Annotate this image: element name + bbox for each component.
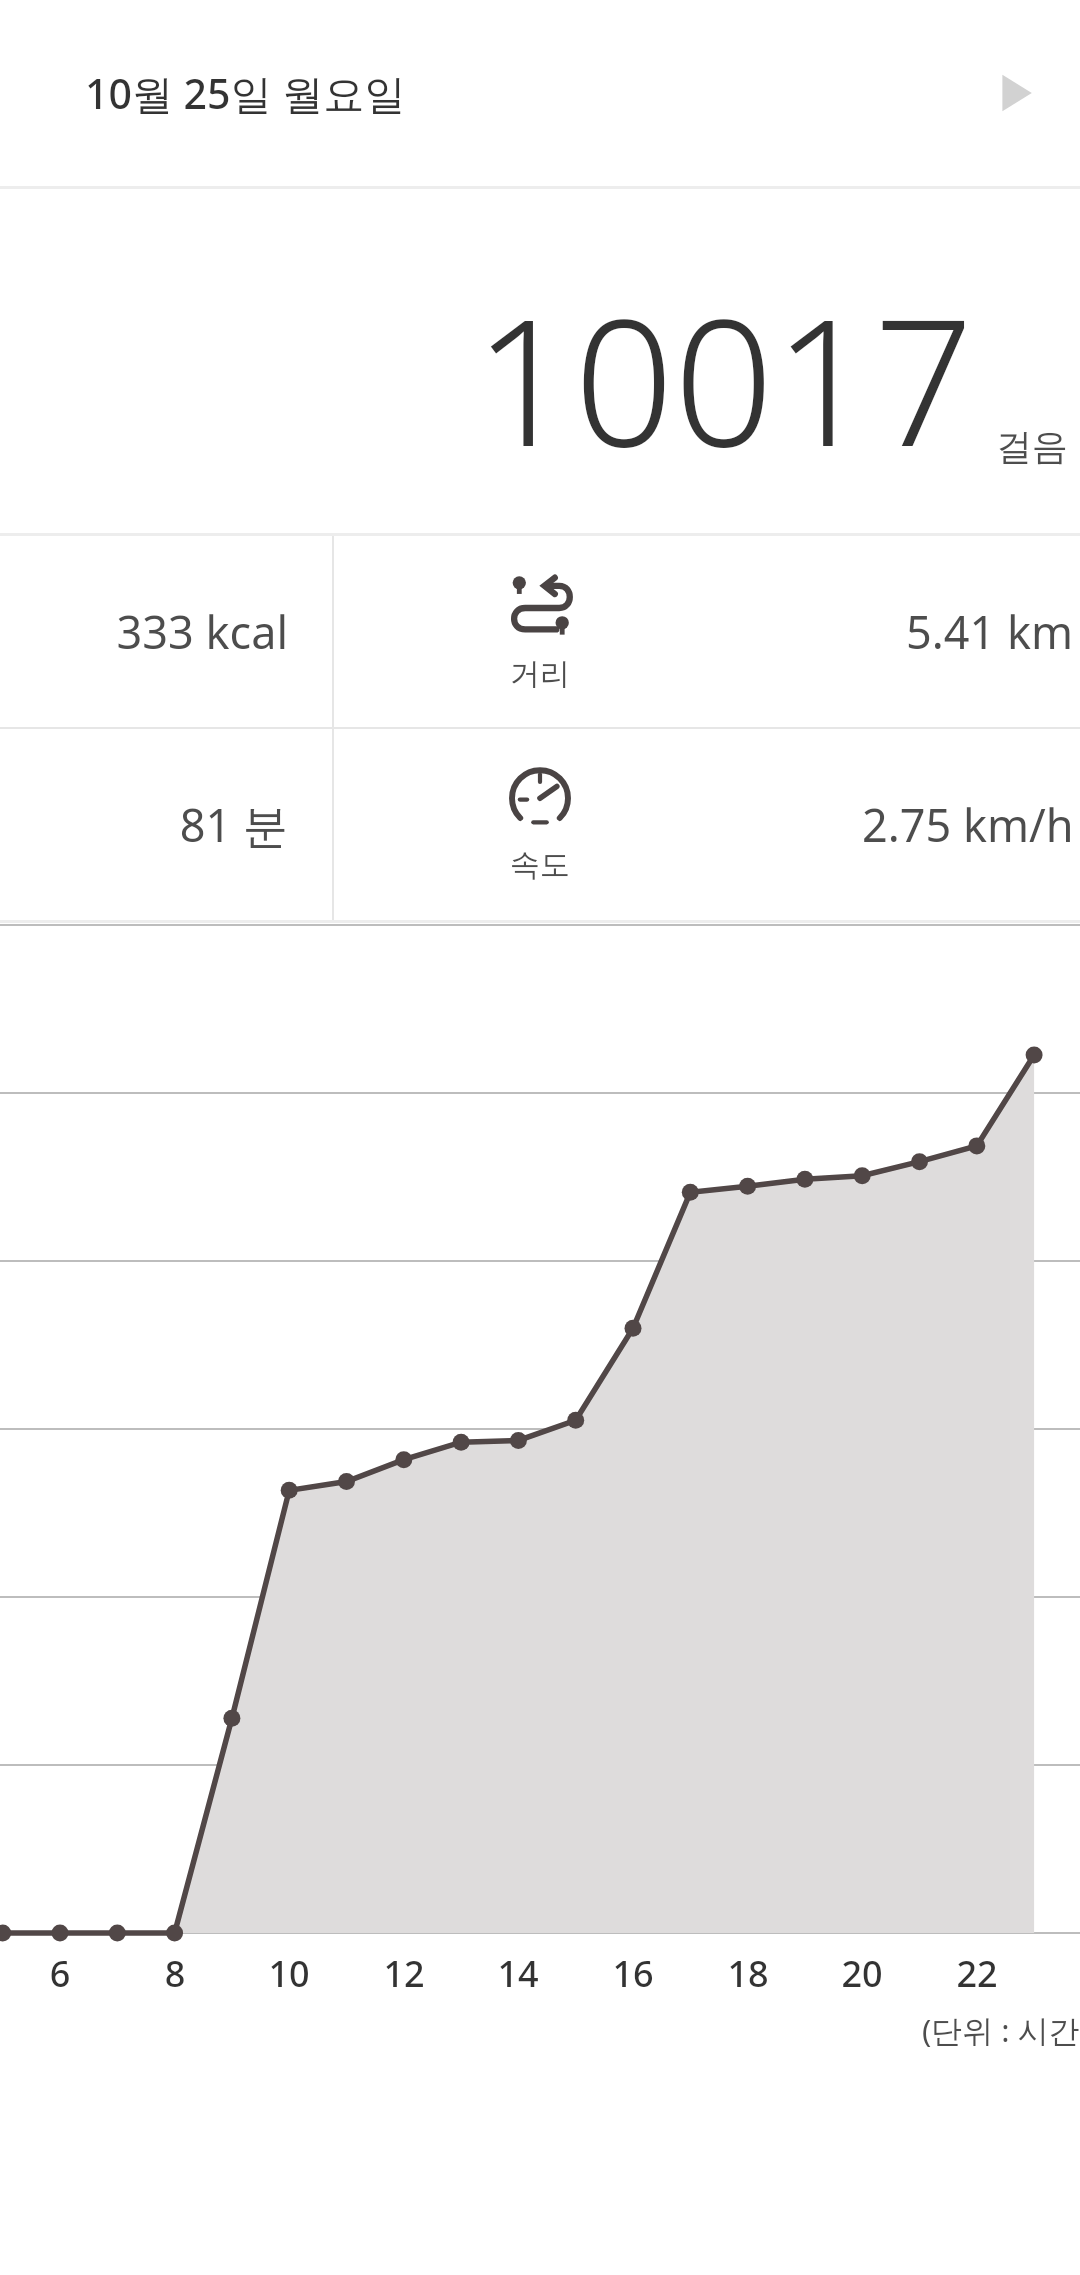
staticText: 걸음	[996, 424, 1068, 469]
staticText: 10017	[474, 259, 974, 497]
staticText: 2.75 km/h	[862, 794, 1074, 855]
staticText: 속도	[510, 846, 570, 884]
staticText: 8	[153, 1949, 197, 1998]
button[interactable]: Next day	[980, 58, 1050, 128]
staticText: 거리	[510, 655, 570, 693]
staticText: 333 kcal	[0, 601, 288, 662]
staticText: 10	[267, 1949, 311, 1998]
staticText: 14	[496, 1949, 540, 1998]
staticText: 22	[955, 1949, 999, 1998]
staticText: 12	[382, 1949, 426, 1998]
staticText: 6	[38, 1949, 82, 1998]
staticText: 10월 25일 월요일	[85, 65, 406, 121]
staticText: 20	[840, 1949, 884, 1998]
staticText: 5.41 km	[906, 601, 1074, 662]
staticText: 81 분	[0, 794, 288, 855]
button[interactable]: 81 분	[0, 729, 1080, 920]
staticText: (단위 : 시간)	[922, 2009, 1080, 2051]
button[interactable]: 10월 25일 월요일	[0, 0, 1080, 186]
button[interactable]: 333 kcal	[0, 536, 1080, 727]
staticText: 16	[611, 1949, 655, 1998]
staticText: 18	[726, 1949, 770, 1998]
